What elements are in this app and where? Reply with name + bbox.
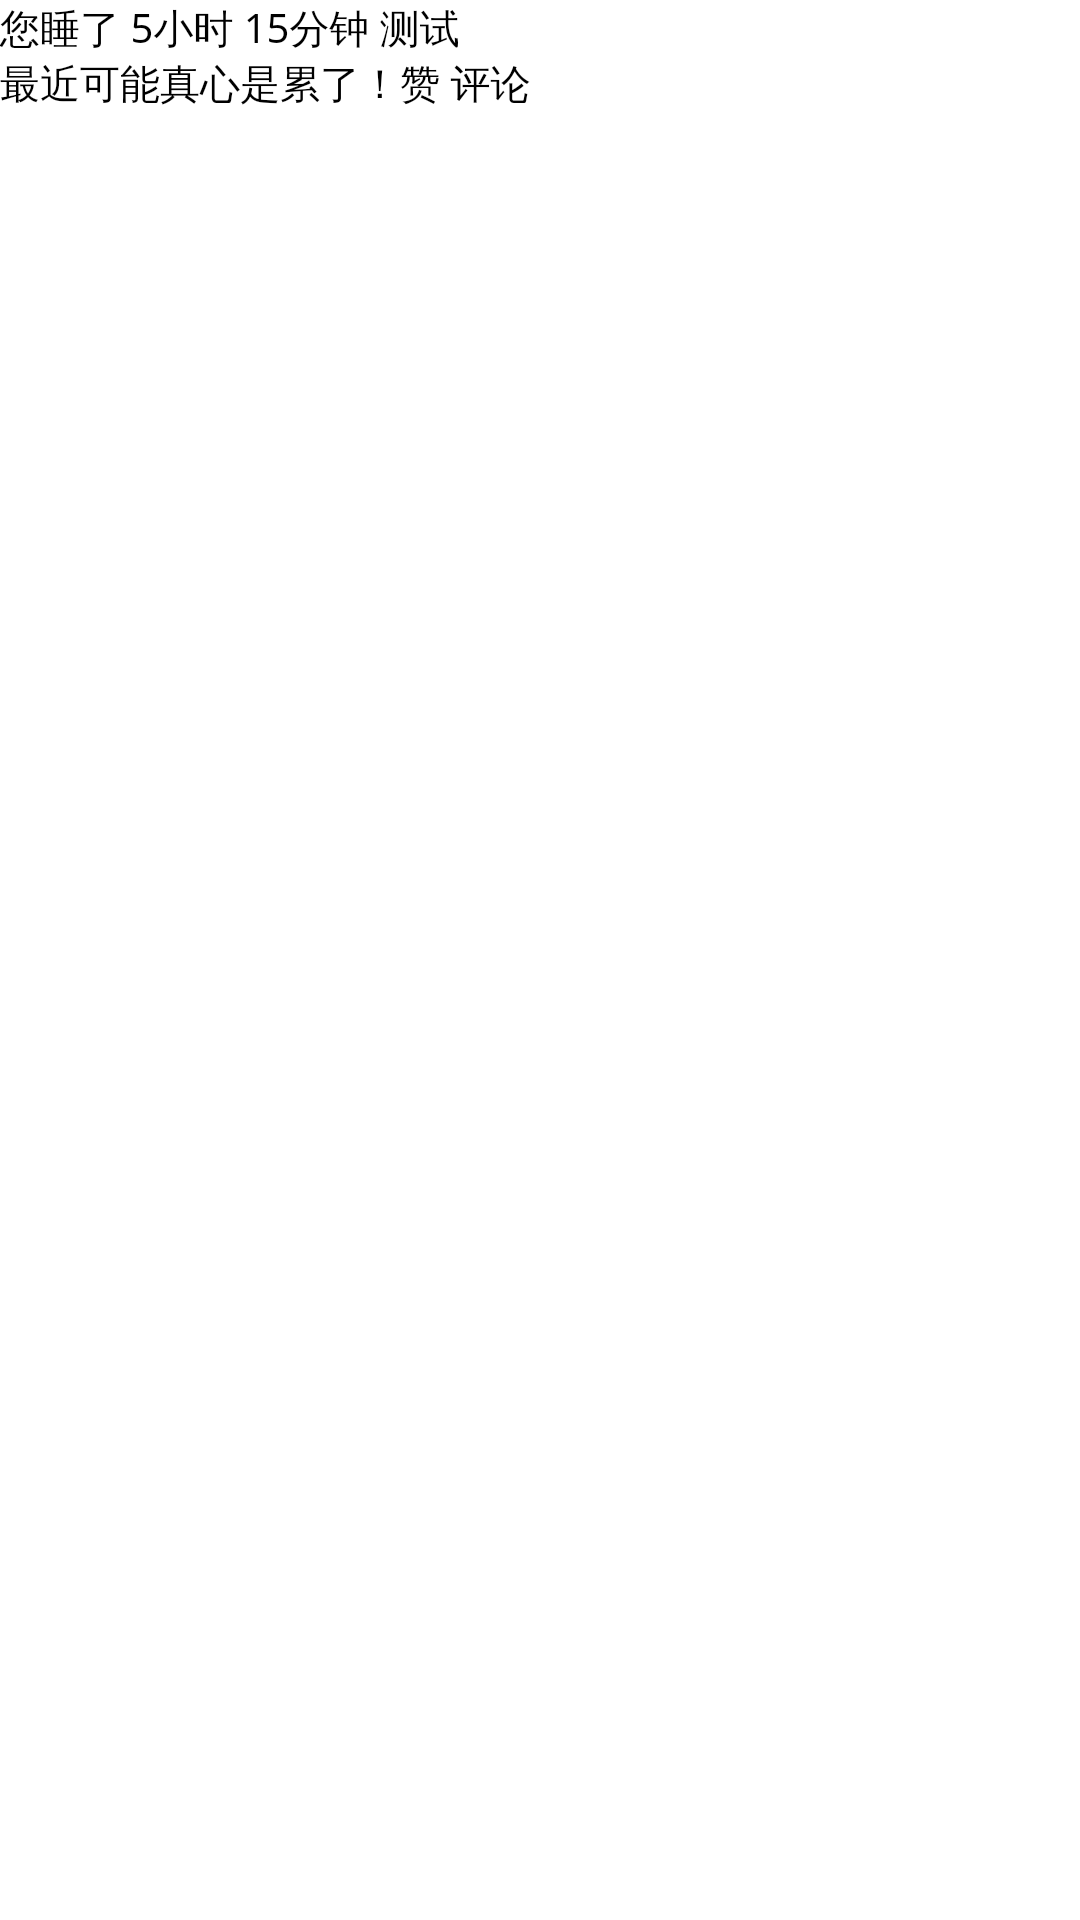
staticText: 您睡了 5小时 15分钟 测试 <box>0 0 460 55</box>
staticText: 最近可能真心是累了！赞 评论 <box>0 55 531 110</box>
